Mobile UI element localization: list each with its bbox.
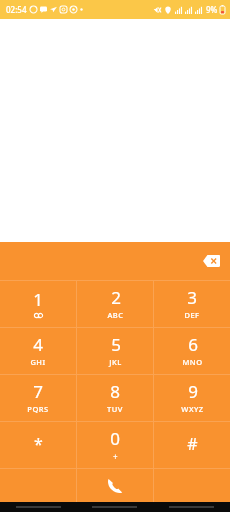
staticText: 1 — [33, 288, 43, 311]
button[interactable]: 6 — [154, 328, 230, 374]
button[interactable]: 1 — [0, 281, 76, 327]
staticText: ABC — [107, 310, 124, 320]
button[interactable]: 9 — [154, 375, 230, 421]
staticText: * — [34, 433, 43, 455]
staticText: 6 — [188, 333, 198, 356]
button[interactable]: Call — [77, 469, 153, 502]
button[interactable]: 0 — [77, 422, 153, 468]
staticText: 8 — [110, 380, 120, 403]
staticText: TUV — [107, 404, 123, 414]
staticText: 7 — [33, 380, 43, 403]
button[interactable]: 3 — [154, 281, 230, 327]
staticText: PQRS — [27, 404, 49, 414]
staticText: GHI — [30, 357, 46, 367]
staticText: 9 — [188, 380, 198, 403]
button[interactable]: Backspace — [200, 252, 222, 270]
button[interactable]: 7 — [0, 375, 76, 421]
button[interactable]: 8 — [77, 375, 153, 421]
button[interactable]: 4 — [0, 328, 76, 374]
staticText: 9% — [206, 4, 218, 15]
staticText: + — [113, 451, 118, 462]
staticText: # — [187, 433, 198, 455]
button[interactable]: # — [154, 422, 230, 468]
staticText: 4 — [33, 333, 43, 356]
button[interactable]: 2 — [77, 281, 153, 327]
staticText: WXYZ — [181, 404, 204, 414]
staticText: 02:54 — [6, 4, 27, 15]
staticText: 0 — [110, 427, 120, 450]
staticText: 2 — [111, 286, 121, 309]
staticText: MNO — [182, 357, 203, 367]
button[interactable]: * — [0, 422, 76, 468]
staticText: 5 — [111, 333, 121, 356]
staticText: DEF — [184, 310, 200, 320]
button[interactable]: 5 — [77, 328, 153, 374]
staticText: 3 — [187, 286, 197, 309]
staticText: JKL — [109, 357, 122, 367]
